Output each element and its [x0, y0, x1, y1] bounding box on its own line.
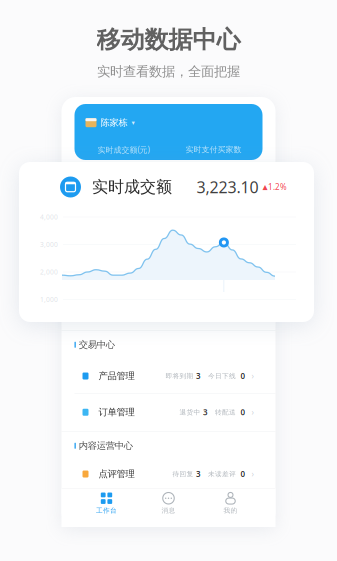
staticText: 实时支付买家数 [185, 145, 241, 155]
staticText: 交易中心 [79, 339, 115, 350]
staticText: 3 [196, 469, 201, 479]
staticText: 消息 [161, 506, 175, 515]
staticText: ▲ [262, 183, 267, 191]
staticText: 3 [196, 371, 201, 381]
staticText: 2,000 [40, 268, 58, 276]
staticText: 移动数据中心 [96, 25, 240, 54]
staticText: 今日下线 [208, 372, 236, 380]
staticText: 0 [240, 469, 245, 479]
button[interactable]: 消息 [137, 492, 199, 515]
staticText: 产品管理 [98, 370, 134, 382]
staticText: 1.2% [268, 182, 287, 192]
staticText: › [251, 469, 253, 479]
button[interactable]: 订单管理 [61, 393, 275, 431]
staticText: 4,000 [40, 213, 58, 221]
staticText: 3,223.10 [196, 176, 258, 198]
button[interactable]: 陈家栋 [74, 104, 262, 128]
staticText: 即将到期 [165, 372, 193, 380]
button[interactable]: 点评管理 [61, 460, 275, 488]
staticText: 转配送 [215, 408, 236, 416]
staticText: 1,000 [40, 295, 58, 304]
staticText: 3,000 [40, 240, 58, 249]
staticText: › [251, 407, 253, 417]
staticText: 订单管理 [98, 406, 134, 418]
staticText: 内容运营中心 [79, 440, 133, 451]
staticText: 陈家栋 [100, 117, 127, 128]
staticText: 退货中 [179, 408, 200, 416]
button[interactable]: 产品管理 [61, 359, 275, 393]
staticText: 点评管理 [98, 468, 134, 480]
staticText: 未读差评 [208, 470, 236, 478]
staticText: ▾ [131, 119, 134, 126]
staticText: 实时成交额(元) [97, 144, 149, 155]
button[interactable]: 我的 [199, 492, 261, 515]
staticText: 3 [203, 407, 208, 417]
staticText: 实时成交额 [92, 177, 172, 197]
staticText: 待回复 [172, 470, 193, 478]
staticText: 0 [240, 371, 245, 381]
button[interactable]: 工作台 [75, 492, 137, 515]
staticText: › [251, 371, 253, 381]
staticText: 0 [240, 407, 245, 417]
staticText: 实时查看数据，全面把握 [97, 63, 240, 80]
staticText: 工作台 [96, 506, 117, 515]
staticText: 我的 [223, 506, 237, 515]
